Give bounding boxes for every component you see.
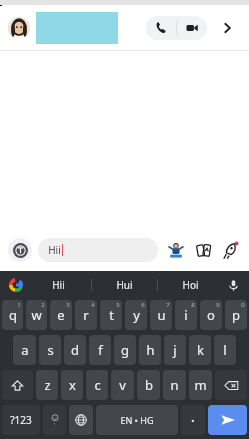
button[interactable]: o [200,300,222,330]
button[interactable]: s [39,335,61,365]
button[interactable]: More [215,16,239,40]
button[interactable]: r [75,300,97,330]
staticText: Hii [52,278,65,292]
staticText: m [194,376,207,394]
button[interactable]: p [225,300,247,330]
button[interactable]: n [163,370,186,400]
button[interactable]: Backspace [215,370,247,400]
button[interactable]: EN • HG [96,405,178,435]
button[interactable]: b [137,370,160,400]
staticText: u [157,306,166,324]
button[interactable]: l [214,335,236,365]
button[interactable]: h [139,335,161,365]
button[interactable]: Contact avatar [8,17,30,39]
button[interactable]: e [50,300,72,330]
staticText: d [71,341,79,359]
staticText: y [133,306,140,324]
button[interactable]: k [189,335,211,365]
staticText: 4 [91,301,95,309]
button[interactable]: Text style [8,238,32,262]
staticText: Hoi [182,278,199,292]
staticText: 0 [241,301,245,309]
button[interactable]: Stickers [165,239,187,261]
button[interactable]: Hii [38,238,158,262]
staticText: p [232,306,240,324]
staticText: i [184,306,188,324]
button[interactable]: . [181,405,205,435]
staticText: EN • HG [120,414,154,426]
staticText: b [145,376,153,394]
button[interactable]: a [13,335,36,365]
button[interactable]: Hui [92,271,157,299]
button[interactable]: Shift [2,370,33,400]
button[interactable]: m [189,370,212,400]
button[interactable]: Hii [26,271,91,299]
staticText: r [83,306,89,324]
staticText: c [94,376,101,394]
staticText: 1 [17,301,21,309]
staticText: o [207,306,215,324]
button[interactable]: q [2,300,23,330]
button[interactable]: i [175,300,197,330]
button[interactable]: Google [6,275,26,295]
button[interactable]: w [26,300,47,330]
staticText: g [121,341,129,359]
staticText: 7 [166,301,170,309]
staticText: v [119,376,126,394]
button[interactable]: j [164,335,186,365]
button[interactable]: u [150,300,172,330]
staticText: n [170,376,179,394]
staticText: 3 [66,301,70,309]
button[interactable]: Send [208,405,247,435]
button[interactable]: z [36,370,58,400]
button[interactable]: t [100,300,122,330]
staticText: w [31,306,42,324]
staticText: k [197,341,204,359]
button[interactable]: Voice input [223,275,243,295]
staticText: 8 [191,301,195,309]
staticText: x [69,376,76,394]
button[interactable]: d [64,335,86,365]
staticText: 2 [41,301,45,309]
button[interactable]: Call [146,16,176,40]
button[interactable]: Video call [177,16,207,40]
button[interactable]: y [125,300,147,330]
staticText: z [44,376,51,394]
button[interactable]: Hoi [158,271,223,299]
staticText: ?123 [10,413,32,427]
staticText: q [9,306,17,324]
button[interactable]: f [89,335,111,365]
staticText: 5 [116,301,120,309]
button[interactable]: Gallery [192,239,214,261]
button[interactable]: Change language [69,405,93,435]
button[interactable]: Emoji [43,405,66,435]
staticText: t [109,306,114,324]
staticText: 9 [216,301,220,309]
staticText: Hii [48,243,61,257]
staticText: j [173,341,177,359]
button[interactable]: x [61,370,83,400]
staticText: f [98,341,103,359]
button[interactable]: g [114,335,136,365]
staticText: h [146,341,155,359]
staticText: . [191,409,195,425]
button[interactable]: Effects [219,239,241,261]
staticText: s [47,341,54,359]
button[interactable]: c [86,370,108,400]
staticText: a [21,341,29,359]
staticText: 6 [141,301,145,309]
staticText: Hui [116,278,133,292]
button[interactable]: ?123 [2,405,40,435]
staticText: e [57,306,65,324]
staticText: l [223,341,227,359]
button[interactable]: v [111,370,134,400]
